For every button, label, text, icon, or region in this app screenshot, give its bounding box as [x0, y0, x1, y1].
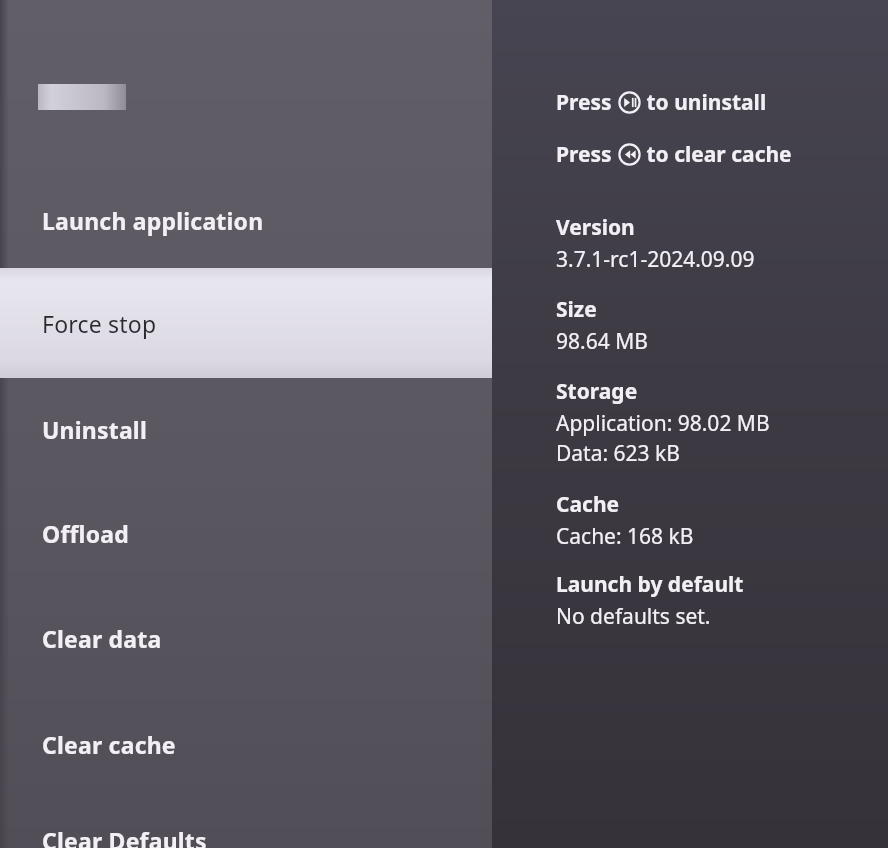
- button[interactable]: Clear cache: [0, 716, 492, 772]
- staticText: to uninstall: [641, 88, 767, 117]
- staticText: Size: [556, 295, 597, 324]
- staticText: to clear cache: [641, 140, 792, 169]
- other: Rewind button: [618, 143, 641, 166]
- button[interactable]: Press: [556, 88, 767, 117]
- staticText: Force stop: [42, 308, 157, 339]
- staticText: Launch application: [42, 205, 264, 236]
- staticText: Clear data: [42, 623, 162, 654]
- button[interactable]: Press: [556, 140, 792, 169]
- staticText: Application: 98.02 MB: [556, 409, 770, 438]
- button[interactable]: Force stop: [0, 268, 492, 378]
- button[interactable]: Offload: [0, 505, 492, 561]
- staticText: Version: [556, 213, 635, 242]
- staticText: Storage: [556, 377, 638, 406]
- button[interactable]: Clear data: [0, 610, 492, 666]
- staticText: No defaults set.: [556, 602, 711, 631]
- staticText: Clear Defaults: [42, 825, 207, 848]
- other: Play pause button: [618, 91, 641, 114]
- button[interactable]: Clear Defaults: [0, 812, 492, 848]
- staticText: Press: [556, 88, 618, 117]
- staticText: Cache: [556, 490, 620, 519]
- staticText: Clear cache: [42, 729, 176, 760]
- staticText: 98.64 MB: [556, 327, 648, 356]
- staticText: Offload: [42, 518, 129, 549]
- staticText: Launch by default: [556, 570, 744, 599]
- staticText: Cache: 168 kB: [556, 522, 694, 551]
- button[interactable]: Uninstall: [0, 401, 492, 457]
- button[interactable]: Launch application: [0, 192, 492, 248]
- staticText: Uninstall: [42, 414, 147, 445]
- staticText: Press: [556, 140, 618, 169]
- staticText: Data: 623 kB: [556, 439, 680, 468]
- staticText: 3.7.1-rc1-2024.09.09: [556, 245, 755, 274]
